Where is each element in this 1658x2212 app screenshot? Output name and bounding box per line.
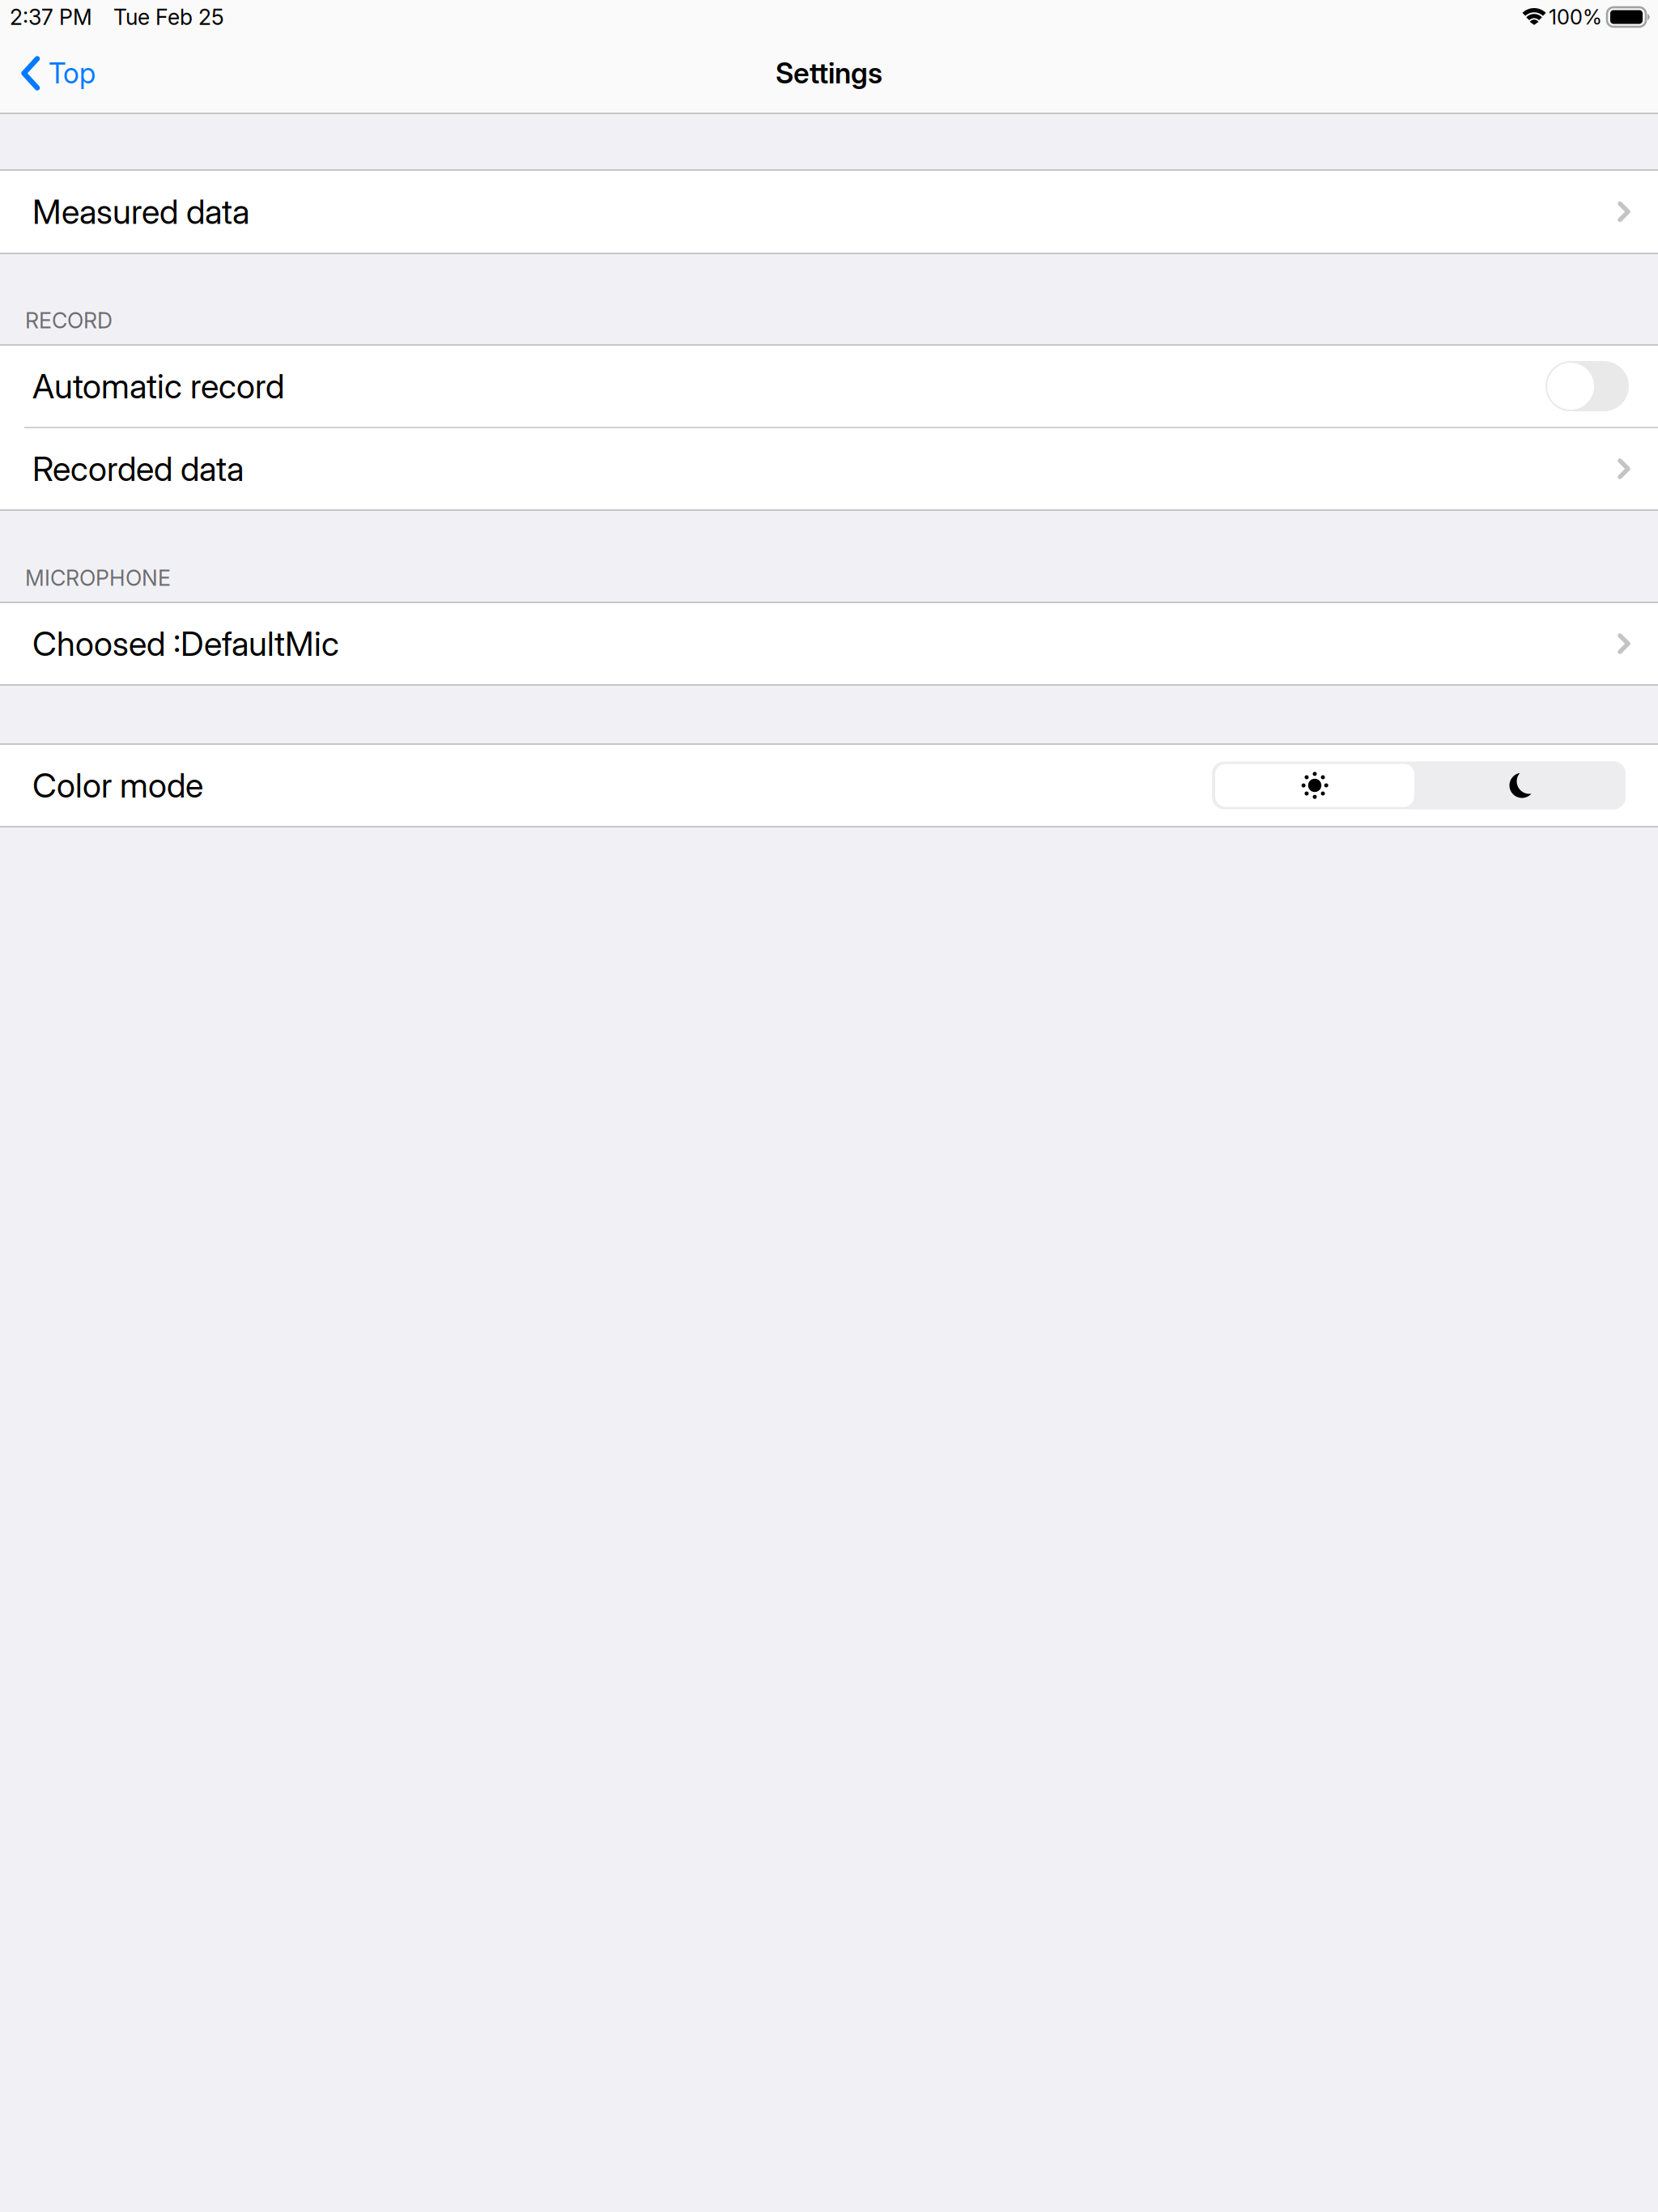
staticText: 2:37 PM — [10, 4, 92, 30]
staticText: RECORD — [25, 307, 113, 334]
staticText: Tue Feb 25 — [113, 4, 224, 30]
button[interactable]: Measured data — [0, 171, 1658, 253]
staticText: Measured data — [32, 191, 249, 232]
button[interactable]: Recorded data — [0, 428, 1658, 509]
staticText: Automatic record — [32, 366, 284, 406]
staticText: Recorded data — [32, 449, 244, 489]
staticText: Choosed :DefaultMic — [32, 623, 339, 664]
button[interactable]: Top — [0, 47, 107, 100]
button[interactable]: Light appearance — [1212, 761, 1418, 809]
staticText: Top — [49, 56, 96, 90]
staticText: Color mode — [32, 765, 203, 806]
button[interactable]: Choosed :DefaultMic — [0, 603, 1658, 684]
button[interactable]: Dark appearance — [1418, 761, 1626, 809]
staticText: 100% — [1549, 5, 1602, 29]
button[interactable]: Automatic record — [0, 346, 1658, 427]
staticText: MICROPHONE — [25, 565, 171, 591]
staticText: Settings — [776, 56, 882, 90]
